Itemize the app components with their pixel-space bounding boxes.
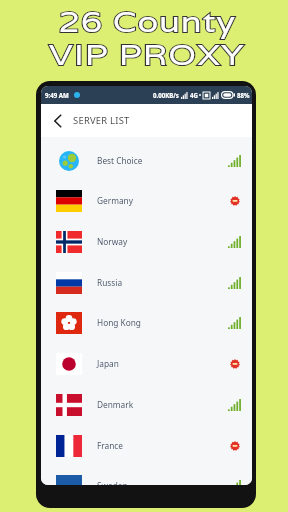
staticText: 26 County: [58, 3, 237, 41]
button[interactable]: France: [41, 425, 252, 466]
staticText: Japan: [97, 358, 119, 369]
button[interactable]: Russia: [41, 262, 252, 303]
staticText: VIP PROXY: [49, 36, 245, 74]
staticText: 9:49 AM: [45, 91, 69, 99]
staticText: 0.00KB/s: [153, 91, 179, 99]
staticText: 88%: [237, 91, 250, 99]
staticText: Sweden: [97, 480, 128, 485]
staticText: Norway: [97, 236, 128, 247]
staticText: VIP PROXY: [49, 36, 245, 74]
staticText: 4G: [190, 91, 198, 99]
button[interactable]: Best Choice: [41, 140, 252, 181]
staticText: 26 County: [58, 3, 237, 41]
button[interactable]: Denmark: [41, 384, 252, 425]
staticText: SERVER LIST: [73, 114, 130, 127]
button[interactable]: Sweden: [41, 465, 252, 485]
staticText: Hong Kong: [97, 317, 141, 328]
staticText: Best Choice: [97, 155, 143, 166]
button[interactable]: Back: [46, 109, 70, 133]
staticText: Russia: [97, 277, 123, 288]
button[interactable]: Japan: [41, 343, 252, 384]
button[interactable]: Norway: [41, 221, 252, 262]
staticText: Germany: [97, 195, 133, 206]
button[interactable]: Hong Kong: [41, 302, 252, 343]
button[interactable]: Germany: [41, 180, 252, 221]
staticText: Denmark: [97, 399, 134, 410]
staticText: France: [97, 440, 124, 451]
